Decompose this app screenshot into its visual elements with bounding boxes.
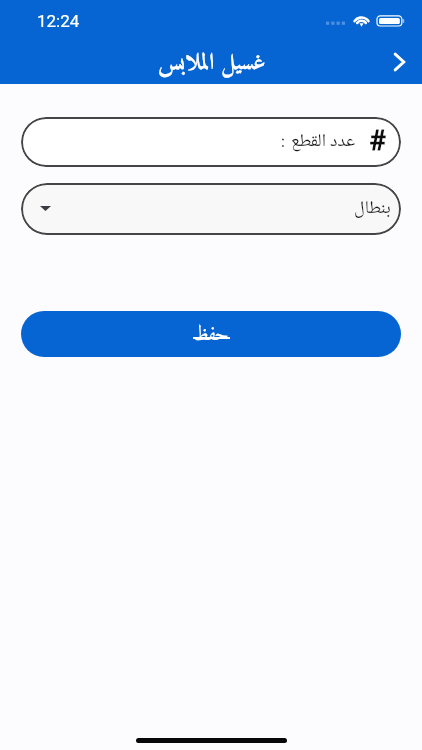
- staticText: عدد القطع: [291, 127, 356, 158]
- staticText: حفظ: [193, 318, 229, 353]
- button[interactable]: Next: [377, 40, 421, 84]
- button[interactable]: بنطال: [21, 183, 401, 235]
- button[interactable]: :: [21, 117, 401, 167]
- staticText: غسيل الملابس: [158, 43, 266, 83]
- staticText: #: [369, 125, 386, 157]
- staticText: 12:24: [37, 11, 80, 31]
- button[interactable]: حفظ: [21, 311, 401, 357]
- staticText: بنطال: [354, 194, 391, 225]
- other: Open dropdown: [40, 206, 51, 211]
- staticText: :: [281, 127, 285, 158]
